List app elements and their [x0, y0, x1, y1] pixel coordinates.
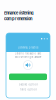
staticText: choose the right answer [14, 55, 41, 59]
button[interactable]: Third option [9, 88, 47, 92]
staticText: Listen to the audio and [14, 52, 41, 55]
staticText: comprehension [4, 16, 32, 21]
staticText: Second option [18, 83, 37, 86]
button[interactable]: Play audio [23, 61, 32, 70]
staticText: Listening practice [18, 46, 38, 49]
staticText: Third option [19, 88, 36, 91]
button[interactable]: Second option [9, 83, 47, 87]
button[interactable] [9, 74, 47, 80]
staticText: Enhance listening [4, 10, 34, 15]
